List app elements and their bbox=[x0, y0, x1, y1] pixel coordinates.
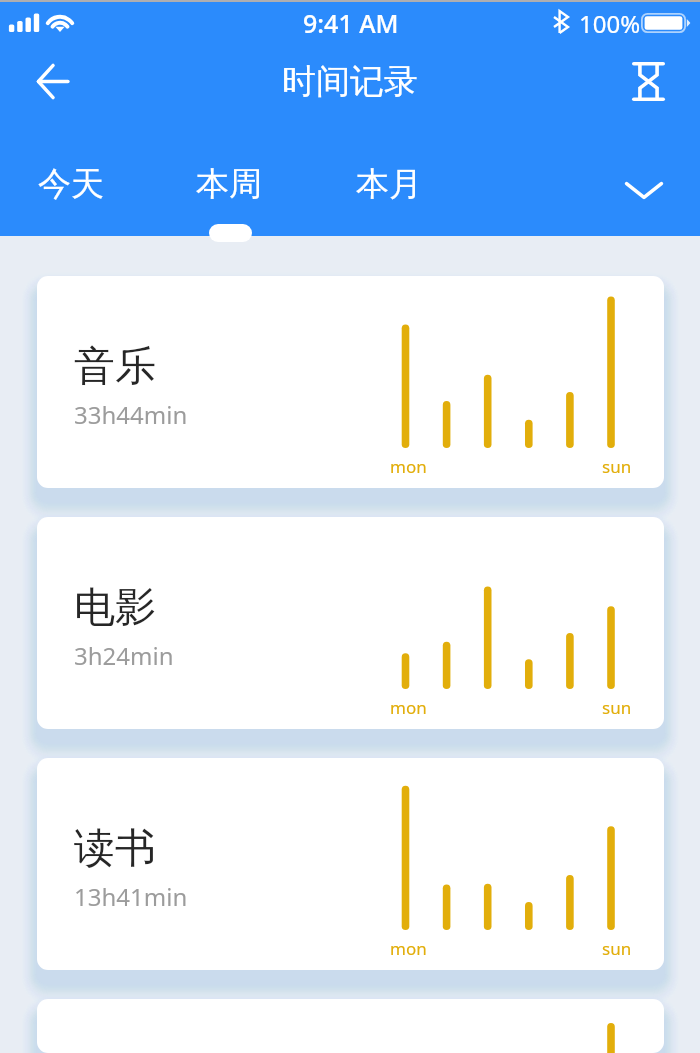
button[interactable]: 本月 bbox=[340, 153, 438, 215]
staticText: 9:41 AM bbox=[303, 6, 399, 40]
staticText: 33h44min bbox=[74, 398, 188, 431]
staticText: sun bbox=[602, 455, 632, 478]
button[interactable]: Timer bbox=[618, 51, 678, 111]
button[interactable]: Expand bbox=[614, 160, 674, 220]
staticText: mon bbox=[390, 937, 427, 960]
button[interactable]: 读书 bbox=[37, 758, 664, 970]
button[interactable]: 音乐 bbox=[37, 276, 664, 488]
staticText: 今天 bbox=[38, 163, 104, 205]
staticText: 13h41min bbox=[74, 880, 188, 913]
staticText: sun bbox=[602, 937, 632, 960]
staticText: 电影 bbox=[74, 582, 156, 634]
button[interactable]: 运动 bbox=[37, 999, 664, 1053]
staticText: mon bbox=[390, 455, 427, 478]
button[interactable]: 本周 bbox=[180, 153, 278, 215]
staticText: 读书 bbox=[74, 823, 156, 875]
staticText: 3h24min bbox=[74, 639, 174, 672]
staticText: sun bbox=[602, 696, 632, 719]
staticText: 100% bbox=[579, 7, 641, 40]
staticText: 本月 bbox=[356, 163, 422, 205]
staticText: 本周 bbox=[196, 163, 262, 205]
button[interactable]: 今天 bbox=[22, 153, 120, 215]
staticText: mon bbox=[390, 696, 427, 719]
button[interactable]: 电影 bbox=[37, 517, 664, 729]
staticText: 时间记录 bbox=[282, 60, 418, 103]
staticText: 音乐 bbox=[74, 341, 156, 393]
button[interactable]: Back bbox=[22, 51, 82, 111]
